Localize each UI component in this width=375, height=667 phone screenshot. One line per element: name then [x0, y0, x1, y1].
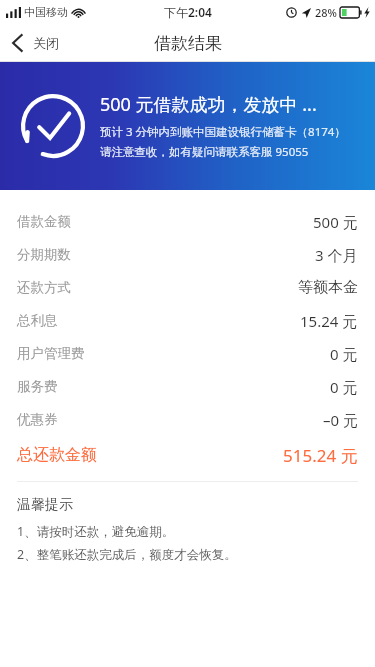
staticText: 服务费 — [17, 378, 58, 395]
staticText: 请注意查收，如有疑问请联系客服 95055 — [100, 144, 309, 160]
staticText: 用户管理费 — [17, 345, 85, 362]
button[interactable]: 总利息 — [17, 304, 358, 337]
button[interactable]: 借款金额 — [17, 205, 358, 238]
staticText: 2、整笔账还款完成后，额度才会恢复。 — [17, 546, 237, 563]
staticText: 借款金额 — [17, 213, 71, 230]
button[interactable]: 分期期数 — [17, 238, 358, 271]
staticText: 1、请按时还款，避免逾期。 — [17, 523, 175, 540]
staticText: 500 元借款成功，发放中 ... — [100, 92, 317, 117]
staticText: 0 元 — [330, 377, 358, 397]
staticText: 中国移动 — [24, 5, 68, 19]
staticText: 500 元 — [313, 212, 358, 232]
staticText: 温馨提示 — [17, 496, 73, 514]
staticText: 等额本金 — [298, 278, 358, 297]
staticText: 15.24 元 — [300, 311, 358, 331]
staticText: 关闭 — [33, 35, 59, 51]
staticText: 0 元 — [330, 344, 358, 364]
staticText: 优惠券 — [17, 411, 58, 428]
staticText: 下午2:04 — [164, 4, 212, 20]
staticText: 总还款金额 — [17, 445, 97, 465]
other: Back — [12, 34, 23, 52]
staticText: 3 个月 — [315, 245, 358, 265]
staticText: 借款结果 — [154, 33, 222, 54]
button[interactable]: 总还款金额 — [17, 436, 358, 474]
staticText: 28% — [315, 5, 337, 20]
button[interactable]: 优惠券 — [17, 403, 358, 436]
button[interactable]: 用户管理费 — [17, 337, 358, 370]
staticText: –0 元 — [323, 410, 358, 430]
button[interactable]: Back — [0, 28, 71, 58]
staticText: 515.24 元 — [283, 444, 358, 467]
staticText: 总利息 — [17, 312, 58, 329]
staticText: 预计 3 分钟内到账中国建设银行储蓄卡（8174） — [100, 124, 346, 140]
staticText: 分期期数 — [17, 246, 71, 263]
button[interactable]: 服务费 — [17, 370, 358, 403]
staticText: 还款方式 — [17, 279, 71, 296]
button[interactable]: 还款方式 — [17, 271, 358, 304]
